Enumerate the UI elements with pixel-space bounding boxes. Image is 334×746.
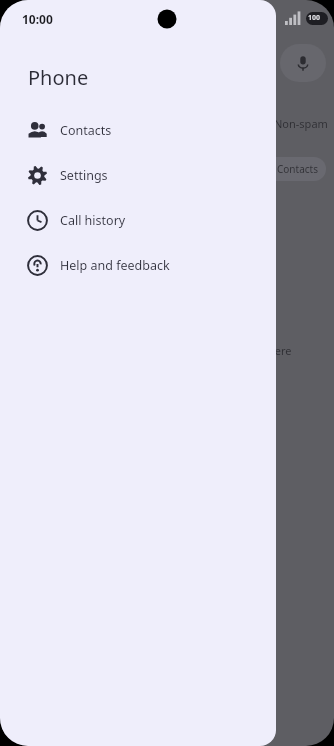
button[interactable]: Voice search bbox=[280, 44, 326, 82]
staticText: Contacts bbox=[60, 122, 112, 139]
staticText: 10:00 bbox=[22, 11, 53, 27]
button[interactable]: Contacts bbox=[0, 108, 276, 153]
button[interactable]: Settings bbox=[0, 153, 276, 198]
staticText: Help and feedback bbox=[60, 257, 170, 274]
staticText: Settings bbox=[60, 167, 108, 184]
button[interactable]: Call history bbox=[0, 198, 276, 243]
button[interactable]: Contacts bbox=[250, 157, 326, 181]
staticText: Call history bbox=[60, 212, 126, 229]
staticText: Phone bbox=[28, 64, 89, 91]
staticText: Contacts bbox=[277, 162, 318, 176]
staticText: here bbox=[268, 343, 292, 358]
button[interactable]: Help and feedback bbox=[0, 243, 276, 288]
staticText: Non-spam bbox=[274, 116, 328, 131]
staticText: 100 bbox=[308, 13, 321, 23]
